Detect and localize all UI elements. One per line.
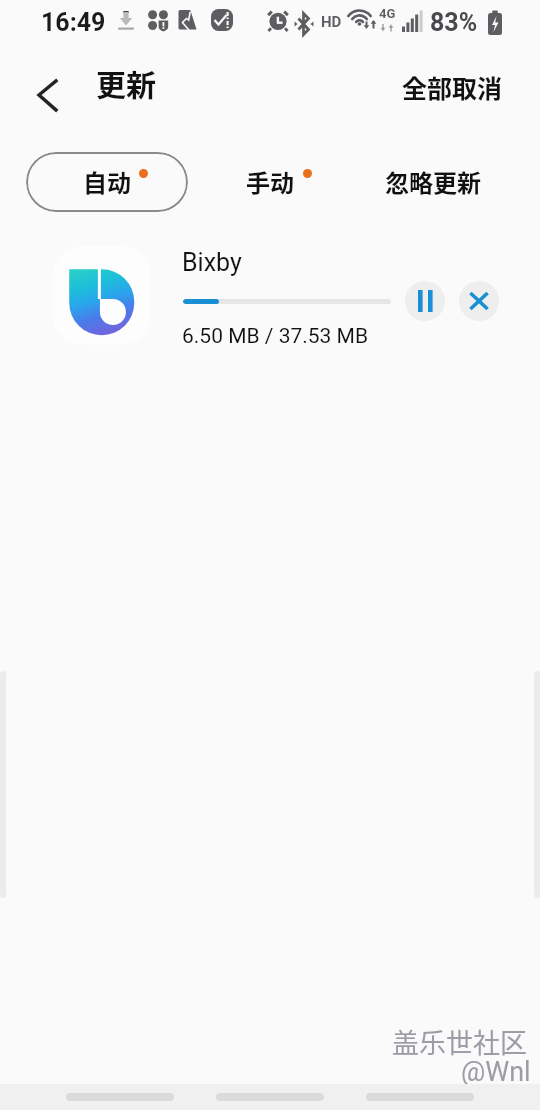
staticText: 手动 <box>246 164 294 199</box>
staticText: Bixby <box>182 248 242 277</box>
staticText: 忽略更新 <box>385 164 481 199</box>
staticText: 16:49 <box>41 8 106 37</box>
staticText: 自动 <box>83 164 131 199</box>
staticText: 盖乐世社区 <box>392 1022 527 1061</box>
button[interactable]: Back <box>23 72 71 120</box>
button[interactable]: 手动 <box>235 152 330 212</box>
button[interactable]: Pause <box>405 281 445 321</box>
staticText: @Wnl <box>461 1056 531 1088</box>
button[interactable]: 全部取消 <box>402 69 503 105</box>
staticText: 6.50 MB / 37.53 MB <box>182 324 369 349</box>
button[interactable]: 忽略更新 <box>374 152 494 212</box>
staticText: 4G <box>379 6 396 21</box>
staticText: HD <box>321 13 342 31</box>
button[interactable]: Cancel <box>459 281 499 321</box>
staticText: 83% <box>430 8 478 37</box>
staticText: 更新 <box>96 61 156 104</box>
button[interactable]: 自动 <box>26 152 188 212</box>
